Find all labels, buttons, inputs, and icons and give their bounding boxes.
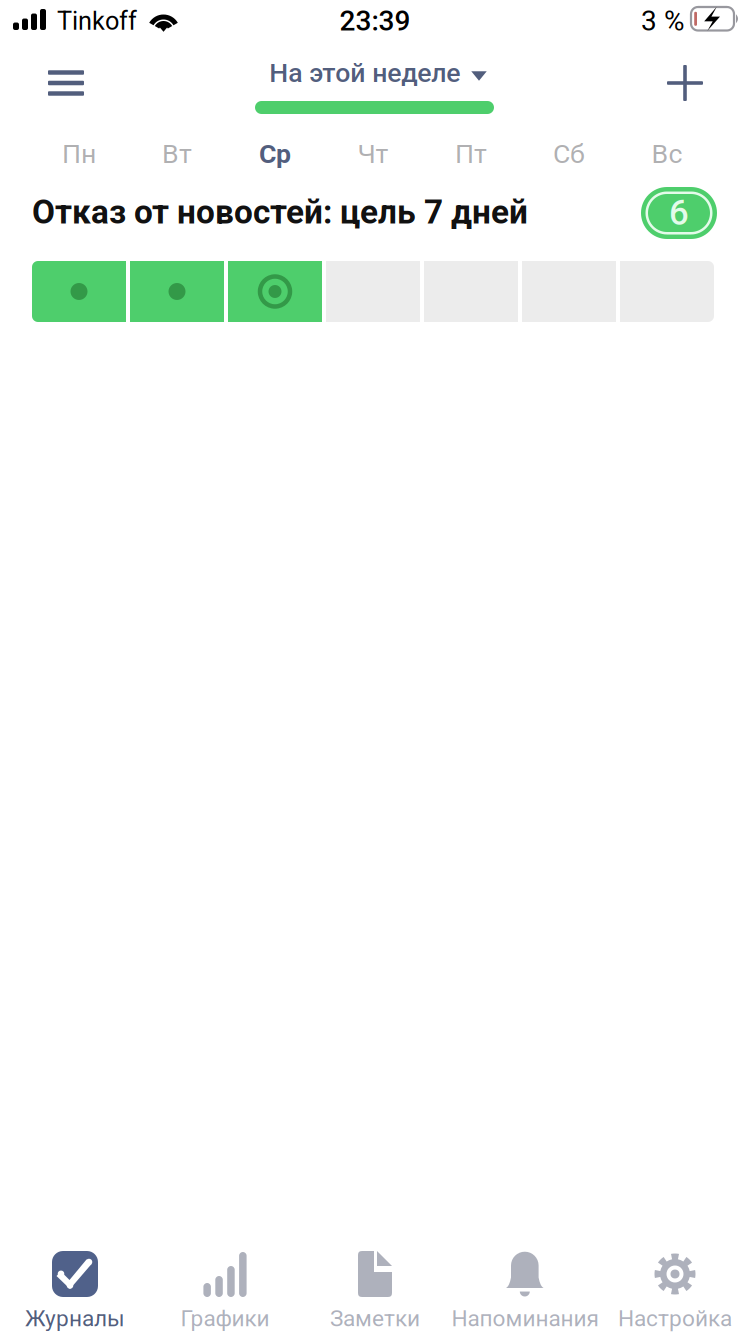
button[interactable]: Day 3 <box>0 0 94 61</box>
staticText: Журналы <box>25 1305 125 1332</box>
staticText: Сб <box>553 138 585 170</box>
staticText: На этой неделе <box>269 57 460 89</box>
button[interactable]: 6 day streak <box>0 0 76 52</box>
staticText: 6 <box>669 193 689 233</box>
staticText: Напоминания <box>451 1305 598 1332</box>
button[interactable]: Day 2 <box>0 0 94 61</box>
staticText: Ср <box>259 138 291 170</box>
staticText: Графики <box>180 1305 269 1332</box>
button[interactable]: Day 4 <box>0 0 94 61</box>
staticText: Чт <box>357 138 388 170</box>
staticText: 3 % <box>641 5 685 37</box>
button[interactable]: Day 5 <box>0 0 94 61</box>
staticText: Вс <box>651 138 682 170</box>
staticText: Заметки <box>330 1305 420 1332</box>
staticText: Пт <box>455 138 487 170</box>
button[interactable]: Заметки <box>300 1245 450 1334</box>
staticText: Настройка <box>618 1305 732 1332</box>
button[interactable]: На этой неделе <box>0 0 240 40</box>
button[interactable]: Day 1 <box>0 0 94 61</box>
button[interactable]: Menu <box>0 0 80 60</box>
staticText: Отказ от новостей: цель 7 дней <box>32 192 528 232</box>
button[interactable]: Журналы <box>0 1245 150 1334</box>
button[interactable]: Day 6 <box>0 0 94 61</box>
button[interactable]: Add <box>0 0 80 60</box>
button[interactable]: Напоминания <box>450 1245 600 1334</box>
staticText: Tinkoff <box>57 6 137 36</box>
staticText: Вт <box>162 138 192 170</box>
staticText: 23:39 <box>339 5 410 37</box>
staticText: Пн <box>62 138 96 170</box>
button[interactable]: Day 7 <box>0 0 94 61</box>
button[interactable]: Настройка <box>600 1245 750 1334</box>
button[interactable]: Графики <box>150 1245 300 1334</box>
